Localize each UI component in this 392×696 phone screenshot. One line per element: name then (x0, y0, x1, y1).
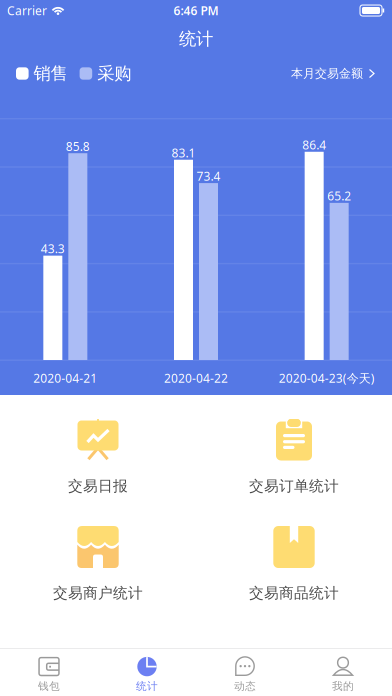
staticText: 6:46 PM (173, 2, 218, 18)
staticText: 交易订单统计 (249, 477, 339, 495)
staticText: Carrier (7, 2, 47, 18)
staticText: 2020-04-22 (164, 370, 228, 386)
button[interactable]: 本月交易金额 (291, 66, 376, 81)
button[interactable]: 交易商户统计 (0, 526, 196, 602)
staticText: 钱包 (38, 680, 60, 693)
staticText: 交易日报 (68, 477, 128, 495)
staticText: 动态 (234, 680, 256, 693)
staticText: 85.8 (66, 138, 90, 154)
staticText: 83.1 (171, 145, 195, 161)
staticText: 统计 (136, 680, 158, 693)
button[interactable]: 交易商品统计 (196, 526, 392, 602)
staticText: 统计 (179, 28, 213, 50)
button[interactable]: 交易订单统计 (196, 419, 392, 495)
staticText: 交易商品统计 (249, 584, 339, 602)
staticText: 2020-04-21 (33, 370, 97, 386)
button[interactable]: 钱包 (0, 657, 98, 693)
staticText: 2020-04-23(今天) (279, 370, 375, 386)
staticText: 86.4 (302, 137, 326, 153)
staticText: 73.4 (196, 168, 220, 184)
staticText: 交易商户统计 (53, 584, 143, 602)
button[interactable]: 我的 (294, 657, 392, 693)
button[interactable]: 统计 (98, 657, 196, 693)
staticText: 65.2 (327, 188, 351, 204)
staticText: 销售 (34, 63, 68, 84)
staticText: 采购 (97, 63, 131, 84)
button[interactable]: 动态 (196, 657, 294, 693)
staticText: 本月交易金额 (291, 66, 363, 81)
button[interactable]: 交易日报 (0, 419, 196, 495)
staticText: 43.3 (41, 241, 65, 257)
staticText: 我的 (332, 680, 354, 693)
